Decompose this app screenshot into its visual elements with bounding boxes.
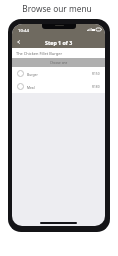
staticText: Step 1 of 3 — [45, 39, 73, 46]
staticText: R150 — [92, 72, 100, 76]
staticText: Meal — [27, 85, 35, 89]
staticText: Browse our menu — [22, 3, 92, 14]
staticText: The Chicken Fillet Burger — [16, 51, 63, 56]
button[interactable]: Burger — [12, 67, 105, 80]
staticText: Choose one — [50, 61, 68, 65]
button[interactable]: Back — [12, 36, 25, 48]
button[interactable]: Meal — [12, 80, 105, 93]
staticText: R180 — [92, 85, 100, 89]
staticText: Burger — [27, 72, 38, 76]
staticText: 10:44 — [18, 27, 29, 33]
